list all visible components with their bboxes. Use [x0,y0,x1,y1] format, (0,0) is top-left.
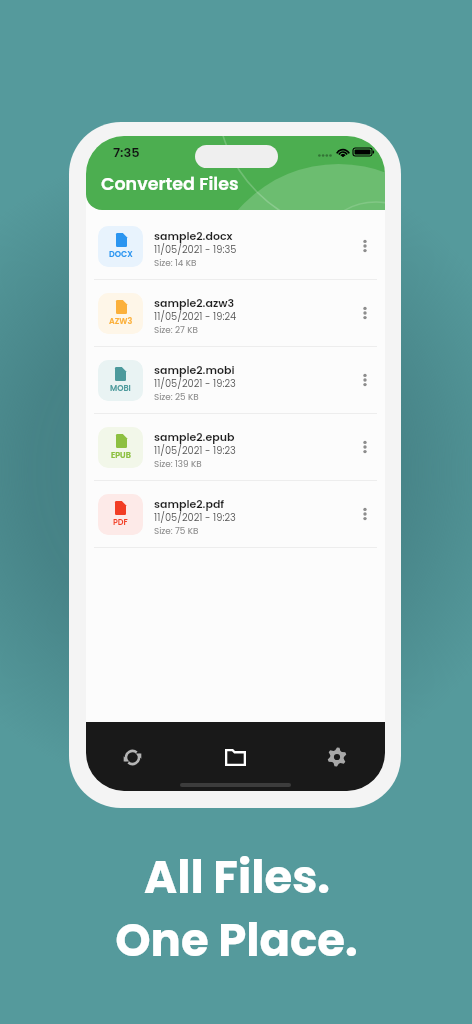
button[interactable]: Convert [111,744,153,770]
staticText: 11/05/2021 - 19:23 [154,377,236,391]
staticText: MOBI [110,383,131,394]
staticText: Size: 27 KB [154,324,198,336]
staticText: 11/05/2021 - 19:23 [154,444,236,458]
button[interactable]: More options [352,300,378,326]
button[interactable]: Settings [316,744,358,770]
staticText: All Files. [144,846,330,909]
staticText: Size: 14 KB [154,257,197,269]
button[interactable]: More options [352,501,378,527]
staticText: sample2.pdf [154,496,225,511]
staticText: Size: 25 KB [154,391,199,403]
button[interactable]: More options [352,434,378,460]
button[interactable]: MOBI [86,347,385,413]
button[interactable]: PDF [86,481,385,547]
button[interactable]: More options [352,367,378,393]
staticText: AZW3 [109,316,133,327]
staticText: sample2.epub [154,429,235,444]
staticText: 7:35 [113,143,140,161]
button[interactable]: AZW3 [86,280,385,346]
button[interactable]: Files [214,744,256,770]
button[interactable]: EPUB [86,414,385,480]
staticText: EPUB [111,450,131,461]
staticText: sample2.azw3 [154,295,235,310]
staticText: Size: 139 KB [154,458,202,470]
staticText: One Place. [115,909,358,972]
staticText: 11/05/2021 - 19:35 [154,243,237,257]
staticText: 11/05/2021 - 19:23 [154,511,236,525]
button[interactable]: DOCX [86,213,385,279]
staticText: Size: 75 KB [154,525,199,537]
button[interactable]: More options [352,233,378,259]
staticText: sample2.mobi [154,362,235,377]
staticText: DOCX [109,249,133,260]
staticText: PDF [113,517,128,528]
staticText: Converted Files [101,172,239,197]
staticText: sample2.docx [154,228,233,243]
staticText: 11/05/2021 - 19:24 [154,310,237,324]
